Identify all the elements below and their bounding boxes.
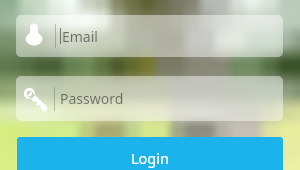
staticText: Password <box>60 89 124 108</box>
staticText: Email <box>62 27 98 46</box>
button[interactable]: Email <box>16 15 283 57</box>
button[interactable]: Password <box>16 76 283 121</box>
button[interactable]: Login <box>17 137 283 170</box>
staticText: Login <box>131 148 169 168</box>
